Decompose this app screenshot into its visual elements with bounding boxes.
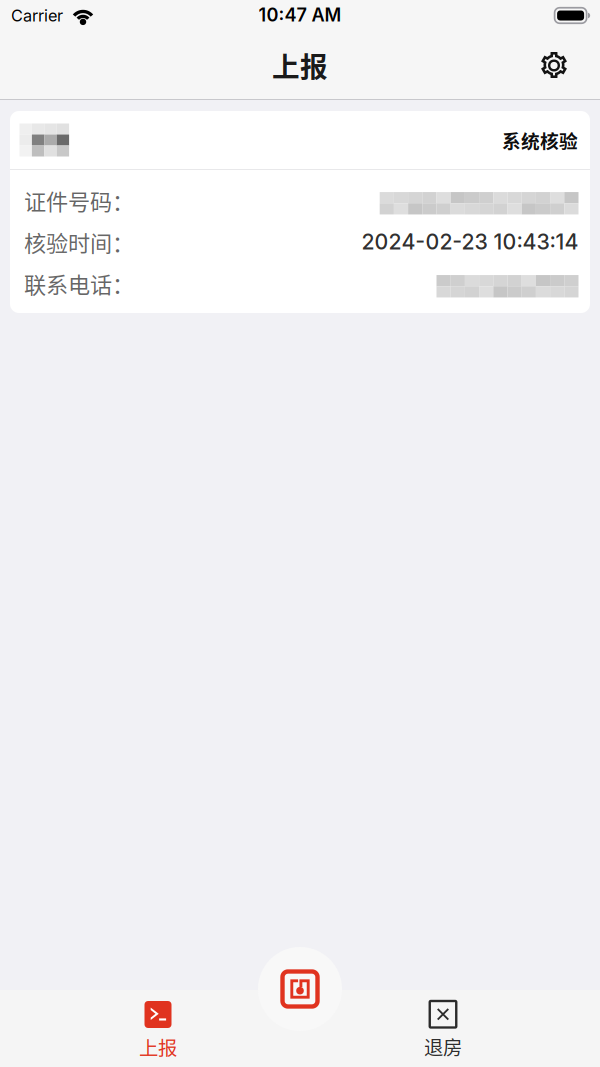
button[interactable]: 扫码 xyxy=(258,947,342,1031)
staticText: Carrier xyxy=(11,6,63,25)
button[interactable]: 设置 xyxy=(529,40,579,90)
staticText: 核验时间： xyxy=(24,226,134,258)
staticText: 10:47 AM xyxy=(258,4,341,26)
staticText: 上报 xyxy=(139,1033,177,1061)
staticText: 证件号码： xyxy=(24,184,134,216)
staticText: 2024-02-23 10:43:14 xyxy=(361,229,578,255)
staticText: 退房 xyxy=(424,1032,462,1060)
button[interactable]: 上报 xyxy=(103,990,213,1067)
staticText: 系统核验 xyxy=(502,126,578,153)
staticText: 联系电话： xyxy=(24,267,134,299)
button[interactable]: 退房 xyxy=(388,990,498,1067)
staticText: 上报 xyxy=(272,45,328,85)
